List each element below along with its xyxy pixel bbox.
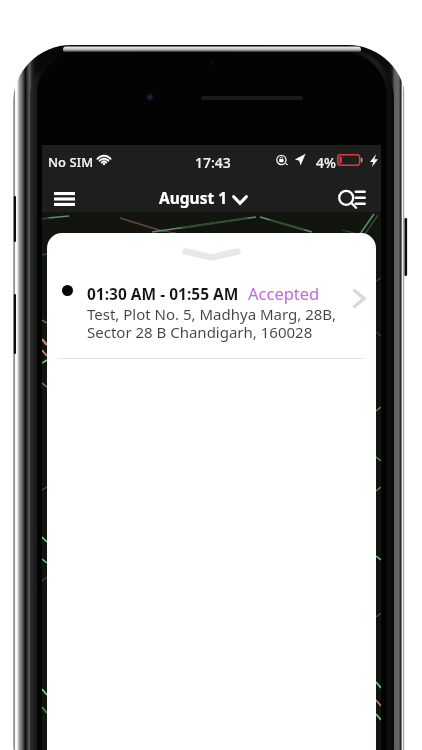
staticText: 01:30 AM - 01:55 AM xyxy=(87,283,239,304)
staticText: 17:43 xyxy=(195,153,231,172)
staticText: Accepted xyxy=(248,282,320,304)
button[interactable]: 01:30 AM - 01:55 AM xyxy=(47,282,376,359)
button[interactable]: Collapse sheet xyxy=(47,233,376,277)
button[interactable]: August 1 xyxy=(159,187,248,208)
staticText: Test, Plot No. 5, Madhya Marg, 28B, Sect… xyxy=(87,304,336,342)
button[interactable]: Open navigation menu xyxy=(42,175,75,212)
staticText: August 1 xyxy=(159,187,228,208)
staticText: 4% xyxy=(316,153,336,172)
button[interactable]: Search xyxy=(331,175,381,212)
staticText: No SIM xyxy=(48,153,94,171)
